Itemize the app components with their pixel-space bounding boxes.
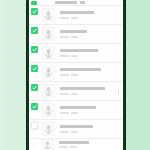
button[interactable]: Select file: [31, 122, 38, 129]
button[interactable]: Select file: [29, 101, 123, 119]
button[interactable]: Select file: [31, 46, 38, 53]
button[interactable]: Select file: [29, 44, 123, 62]
button[interactable]: Select file: [31, 8, 38, 15]
button[interactable]: Select file: [31, 103, 38, 110]
button[interactable]: [29, 139, 123, 150]
button[interactable]: Select file: [29, 25, 123, 43]
button[interactable]: Select file: [29, 82, 123, 100]
button[interactable]: Select file: [29, 120, 123, 138]
button[interactable]: Select file: [31, 84, 38, 91]
button[interactable]: Select file: [31, 27, 38, 34]
button[interactable]: Select file: [29, 63, 123, 81]
button[interactable]: Select file: [31, 65, 38, 72]
button[interactable]: Select file: [29, 6, 123, 24]
button[interactable]: [29, 0, 123, 5]
button[interactable]: More options: [114, 82, 122, 100]
